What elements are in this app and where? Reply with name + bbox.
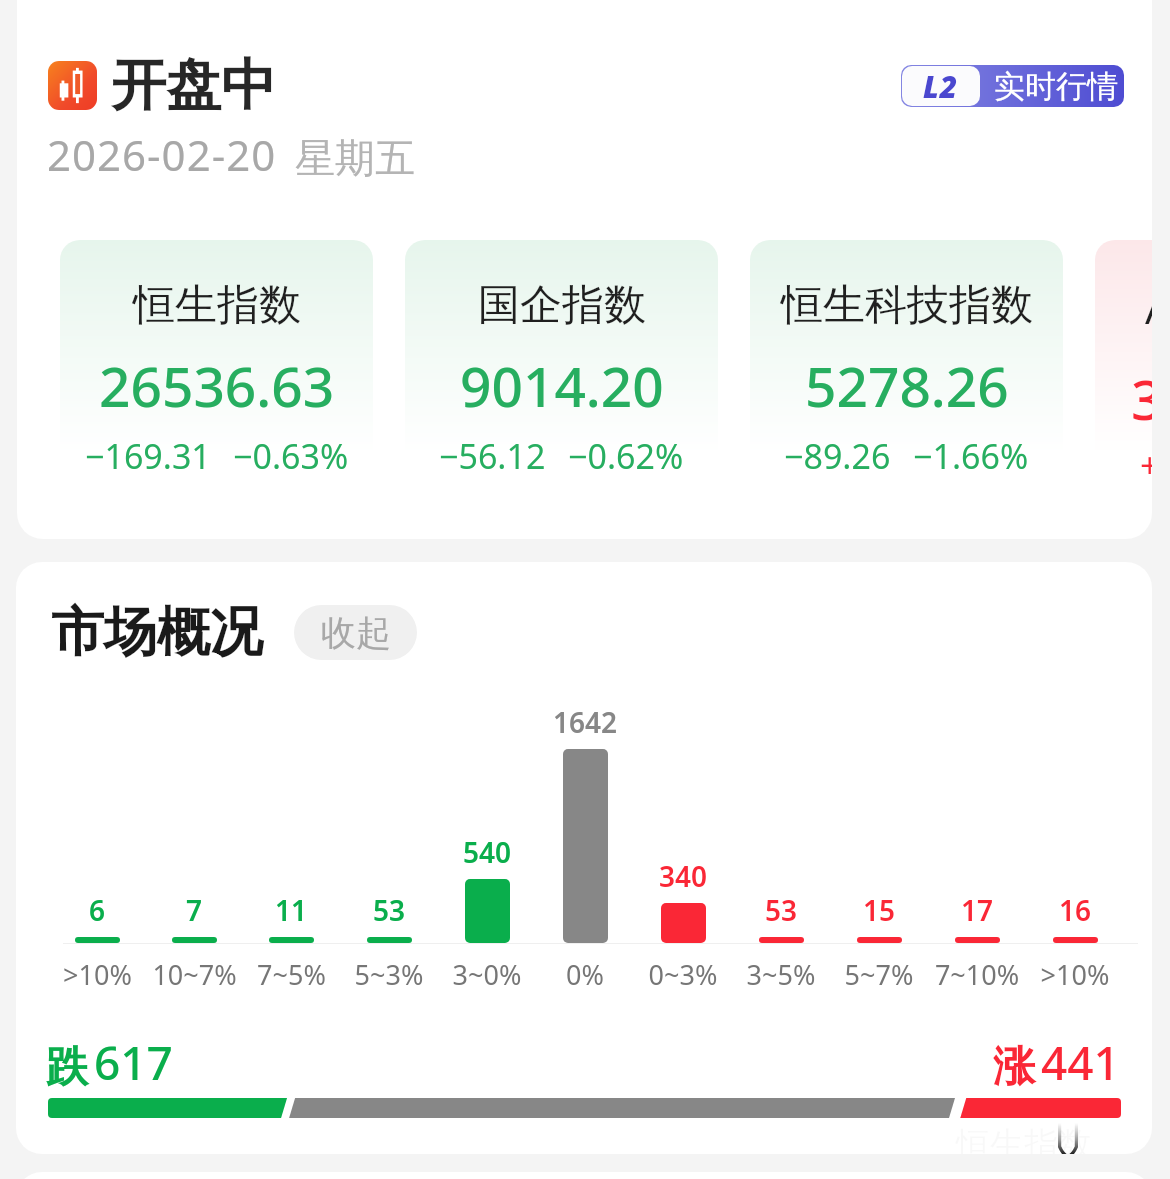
button[interactable]: 恒生科技指数 [750, 240, 1063, 508]
staticText: +12.31 [1140, 442, 1152, 488]
staticText: 5~7% [830, 956, 928, 993]
staticText: −169.31 [85, 433, 211, 479]
staticText: 2026-02-20 [47, 126, 277, 183]
staticText: 11 [275, 891, 308, 929]
staticText: 5~3% [340, 956, 438, 993]
staticText: 10~7% [146, 956, 243, 993]
staticText: 恒生科技指数 [781, 279, 1033, 332]
staticText: 3210.55 [1131, 361, 1152, 436]
staticText: 涨 [993, 1041, 1035, 1094]
staticText: −0.62% [568, 433, 684, 479]
staticText: >10% [1026, 956, 1124, 993]
staticText: 3~5% [732, 956, 830, 993]
staticText: 540 [463, 833, 512, 871]
staticText: −56.12 [439, 433, 546, 479]
staticText: 17 [961, 891, 994, 929]
staticText: 53 [765, 891, 798, 929]
staticText: 16 [1059, 891, 1092, 929]
button[interactable]: 市场状态 [48, 61, 97, 110]
staticText: 26536.63 [99, 348, 335, 423]
staticText: 恒生指数 [956, 1123, 1092, 1154]
staticText: 0~3% [634, 956, 732, 993]
staticText: −89.26 [784, 433, 891, 479]
button[interactable]: 国企指数 [405, 240, 718, 508]
staticText: 53 [373, 891, 406, 929]
button[interactable]: 收起 [294, 605, 417, 660]
staticText: 7 [186, 891, 203, 929]
staticText: 国企指数 [478, 279, 646, 332]
staticText: 0% [536, 956, 634, 993]
staticText: 市场概况 [51, 599, 263, 666]
staticText: 星期五 [295, 133, 415, 183]
staticText: 开盘中 [111, 51, 276, 120]
staticText: 7~5% [243, 956, 340, 993]
staticText: 实时行情 [994, 67, 1118, 106]
staticText: 6 [89, 891, 106, 929]
staticText: 617 [94, 1031, 173, 1094]
staticText: 5278.26 [805, 348, 1009, 423]
staticText: 1642 [553, 703, 618, 741]
staticText: >10% [49, 956, 146, 993]
staticText: L2 [923, 66, 959, 106]
staticText: 15 [863, 891, 896, 929]
staticText: A股指数 [1145, 279, 1152, 336]
button[interactable]: L2 [901, 65, 1124, 107]
button[interactable]: 恒生指数 [60, 240, 373, 508]
staticText: 恒生指数 [133, 279, 301, 332]
staticText: 340 [659, 857, 708, 895]
staticText: 441 [1041, 1031, 1120, 1094]
staticText: 跌 [46, 1041, 88, 1094]
staticText: −1.66% [913, 433, 1029, 479]
staticText: 收起 [321, 611, 391, 655]
staticText: 7~10% [928, 956, 1026, 993]
button[interactable]: A股指数 [1095, 240, 1152, 508]
staticText: −0.63% [233, 433, 349, 479]
staticText: 3~0% [438, 956, 536, 993]
staticText: 9014.20 [460, 348, 664, 423]
